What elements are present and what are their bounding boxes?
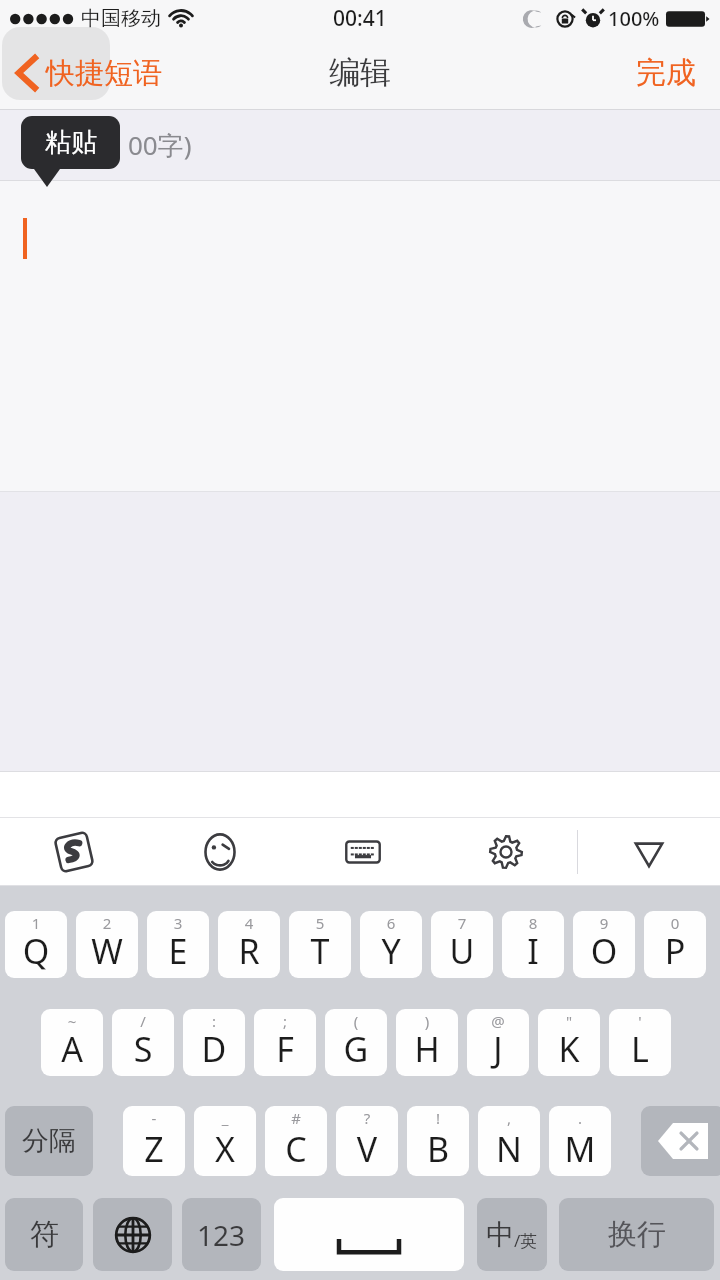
staticText: Y bbox=[360, 928, 422, 974]
staticText: B bbox=[407, 1126, 469, 1172]
button[interactable]: Hide keyboard bbox=[578, 818, 720, 885]
button[interactable]: 1 bbox=[5, 911, 67, 978]
staticText: A bbox=[41, 1026, 103, 1072]
staticText: 完成 bbox=[636, 54, 696, 92]
staticText: F bbox=[254, 1026, 316, 1072]
button[interactable]: 7 bbox=[431, 911, 493, 978]
button[interactable]: 4 bbox=[218, 911, 280, 978]
button[interactable]: Keyboard bbox=[291, 818, 434, 885]
staticText: 123 bbox=[197, 1216, 246, 1254]
button[interactable]: # bbox=[265, 1106, 327, 1176]
button[interactable]: _ bbox=[194, 1106, 256, 1176]
staticText: H bbox=[396, 1026, 458, 1072]
staticText: 6 bbox=[360, 913, 422, 933]
button[interactable]: 2 bbox=[76, 911, 138, 978]
button[interactable]: 快捷短语 bbox=[16, 54, 162, 92]
staticText: 快捷短语 bbox=[46, 55, 162, 92]
staticText: E bbox=[147, 928, 209, 974]
staticText: ; bbox=[254, 1011, 316, 1031]
staticText: /英 bbox=[514, 1229, 538, 1252]
staticText: Q bbox=[5, 928, 67, 974]
button[interactable]: Switch language bbox=[93, 1198, 172, 1271]
button[interactable]: " bbox=[538, 1009, 600, 1076]
button[interactable]: , bbox=[478, 1106, 540, 1176]
button[interactable]: : bbox=[183, 1009, 245, 1076]
staticText: 00字) bbox=[128, 127, 192, 163]
staticText: X bbox=[194, 1126, 256, 1172]
button[interactable]: ' bbox=[609, 1009, 671, 1076]
staticText: C bbox=[265, 1126, 327, 1172]
staticText: 9 bbox=[573, 913, 635, 933]
button[interactable]: ( bbox=[325, 1009, 387, 1076]
button[interactable]: ~ bbox=[41, 1009, 103, 1076]
staticText: 2 bbox=[76, 913, 138, 933]
staticText: L bbox=[609, 1026, 671, 1072]
staticText: - bbox=[123, 1108, 185, 1128]
staticText: 0 bbox=[644, 913, 706, 933]
button[interactable]: Sogou input bbox=[0, 818, 148, 885]
button[interactable]: Space bbox=[274, 1198, 464, 1271]
staticText: ( bbox=[325, 1011, 387, 1031]
button[interactable]: / bbox=[112, 1009, 174, 1076]
button[interactable]: 分隔 bbox=[5, 1106, 93, 1176]
staticText: ' bbox=[609, 1011, 671, 1031]
staticText: R bbox=[218, 928, 280, 974]
staticText: 编辑 bbox=[329, 53, 391, 92]
button[interactable]: 0 bbox=[644, 911, 706, 978]
button[interactable]: Backspace bbox=[641, 1106, 720, 1176]
staticText: W bbox=[76, 928, 138, 974]
button[interactable] bbox=[0, 181, 720, 491]
button[interactable]: 6 bbox=[360, 911, 422, 978]
staticText: Z bbox=[123, 1126, 185, 1172]
button[interactable]: 粘贴 bbox=[21, 116, 120, 169]
button[interactable]: 123 bbox=[182, 1198, 261, 1271]
staticText: I bbox=[502, 928, 564, 974]
staticText: . bbox=[549, 1108, 611, 1128]
staticText: 中 bbox=[486, 1217, 514, 1252]
button[interactable]: ; bbox=[254, 1009, 316, 1076]
staticText: # bbox=[265, 1108, 327, 1128]
staticText: D bbox=[183, 1026, 245, 1072]
button[interactable]: ! bbox=[407, 1106, 469, 1176]
button[interactable]: 8 bbox=[502, 911, 564, 978]
staticText: K bbox=[538, 1026, 600, 1072]
button[interactable]: 3 bbox=[147, 911, 209, 978]
staticText: ) bbox=[396, 1011, 458, 1031]
button[interactable]: 中 bbox=[477, 1198, 547, 1271]
staticText: U bbox=[431, 928, 493, 974]
staticText: , bbox=[478, 1108, 540, 1128]
staticText: V bbox=[336, 1126, 398, 1172]
button[interactable]: . bbox=[549, 1106, 611, 1176]
staticText: 8 bbox=[502, 913, 564, 933]
staticText: O bbox=[573, 928, 635, 974]
staticText: 分隔 bbox=[22, 1124, 76, 1158]
staticText: / bbox=[112, 1011, 174, 1031]
button[interactable]: 换行 bbox=[559, 1198, 714, 1271]
staticText: 7 bbox=[431, 913, 493, 933]
staticText: S bbox=[112, 1026, 174, 1072]
button[interactable]: Settings bbox=[434, 818, 577, 885]
button[interactable]: - bbox=[123, 1106, 185, 1176]
staticText: " bbox=[538, 1011, 600, 1031]
button[interactable]: 完成 bbox=[636, 54, 720, 92]
staticText: 3 bbox=[147, 913, 209, 933]
staticText: ! bbox=[407, 1108, 469, 1128]
button[interactable]: 9 bbox=[573, 911, 635, 978]
button[interactable]: @ bbox=[467, 1009, 529, 1076]
button[interactable]: ) bbox=[396, 1009, 458, 1076]
staticText: P bbox=[644, 928, 706, 974]
staticText: 5 bbox=[289, 913, 351, 933]
staticText: M bbox=[549, 1126, 611, 1172]
staticText: ~ bbox=[41, 1011, 103, 1031]
button[interactable]: Emoji bbox=[148, 818, 291, 885]
staticText: 4 bbox=[218, 913, 280, 933]
staticText: 换行 bbox=[608, 1216, 666, 1253]
staticText: _ bbox=[194, 1108, 256, 1128]
button[interactable]: 符 bbox=[5, 1198, 83, 1271]
staticText: 100% bbox=[608, 5, 660, 32]
button[interactable]: ? bbox=[336, 1106, 398, 1176]
button[interactable]: 5 bbox=[289, 911, 351, 978]
staticText: 中国移动 bbox=[81, 6, 161, 31]
staticText: ? bbox=[336, 1108, 398, 1128]
staticText: 粘贴 bbox=[45, 126, 97, 159]
